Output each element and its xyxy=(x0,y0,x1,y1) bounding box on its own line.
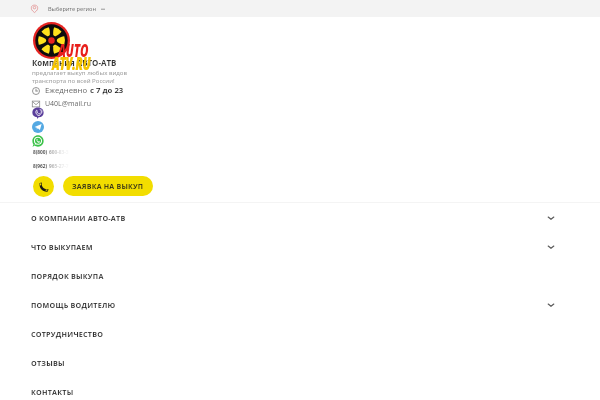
button[interactable]: ПОРЯДОК ВЫКУПА xyxy=(31,261,555,290)
staticText: 965-27-7 xyxy=(49,163,69,170)
staticText: 600-83-3 xyxy=(49,149,69,156)
button[interactable]: WhatsApp xyxy=(32,135,44,147)
button[interactable]: Viber xyxy=(32,107,44,119)
staticText: О КОМПАНИИ АВТО-АТВ xyxy=(31,213,126,223)
staticText: AUTO xyxy=(58,39,89,62)
button[interactable]: Позвонить xyxy=(33,176,54,197)
staticText: КОНТАКТЫ xyxy=(31,387,74,397)
button[interactable]: ЗАЯВКА НА ВЫКУП xyxy=(63,176,153,196)
button[interactable]: ОТЗЫВЫ xyxy=(31,348,555,377)
button[interactable]: О КОМПАНИИ АВТО-АТВ xyxy=(31,203,555,232)
staticText: ЧТО ВЫКУПАЕМ xyxy=(31,242,93,252)
button[interactable]: 8(800) xyxy=(33,149,69,156)
staticText: 8(800) xyxy=(33,149,49,156)
staticText: ПОРЯДОК ВЫКУПА xyxy=(31,271,104,281)
staticText: ОТЗЫВЫ xyxy=(31,358,65,368)
staticText: ЗАЯВКА НА ВЫКУП xyxy=(72,181,144,191)
button[interactable]: U40L@mail.ru xyxy=(32,99,91,109)
button[interactable]: КОНТАКТЫ xyxy=(31,377,555,400)
button[interactable]: СОТРУДНИЧЕСТВО xyxy=(31,319,555,348)
staticText: Выберите регион xyxy=(48,5,97,13)
staticText: транспорта по всей России! xyxy=(32,76,115,84)
button[interactable]: Telegram xyxy=(32,121,44,133)
button[interactable]: 8(962) xyxy=(33,163,69,170)
button[interactable]: ПОМОЩЬ ВОДИТЕЛЮ xyxy=(31,290,555,319)
button[interactable]: Выберите регион xyxy=(30,4,105,13)
staticText: Ежедневно xyxy=(45,85,90,96)
staticText: 8(962) xyxy=(33,163,49,170)
staticText: ПОМОЩЬ ВОДИТЕЛЮ xyxy=(31,300,116,310)
staticText: СОТРУДНИЧЕСТВО xyxy=(31,329,104,339)
staticText: с 7 до 23 xyxy=(90,85,124,96)
staticText: Компания АВТО-АТВ xyxy=(32,58,117,69)
button[interactable]: ЧТО ВЫКУПАЕМ xyxy=(31,232,555,261)
staticText: ATV.RU xyxy=(52,52,91,75)
staticText: U40L@mail.ru xyxy=(45,99,91,109)
staticText: предлагает выкуп любых видов xyxy=(32,68,128,76)
